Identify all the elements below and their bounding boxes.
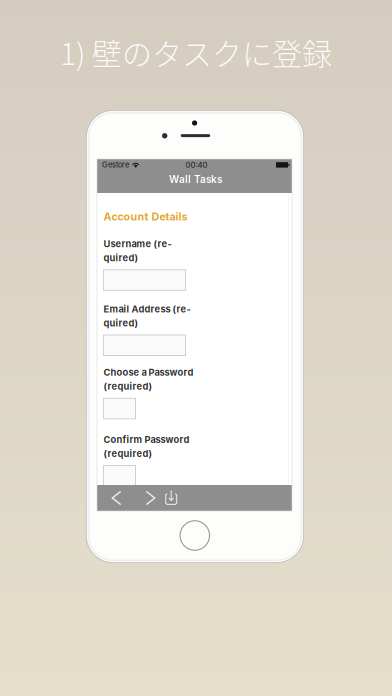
staticText: 00:40: [185, 160, 207, 170]
staticText: (required): [103, 381, 152, 392]
staticText: 1) 壁のタスクに登録: [60, 30, 332, 74]
staticText: Choose a Password: [103, 367, 193, 378]
staticText: (required): [103, 448, 152, 459]
staticText: quired): [103, 252, 138, 263]
staticText: Wall Tasks: [169, 173, 222, 185]
button[interactable]: Forward: [139, 485, 161, 511]
staticText: Confirm Password: [103, 434, 189, 445]
staticText: Email Address (re-: [103, 303, 190, 315]
staticText: quired): [103, 317, 138, 329]
button[interactable]: Back: [105, 485, 127, 511]
button[interactable]: Save: [160, 485, 182, 511]
staticText: Account Details: [103, 210, 187, 223]
staticText: Username (re-: [103, 238, 171, 249]
staticText: Gestore: [102, 160, 129, 169]
